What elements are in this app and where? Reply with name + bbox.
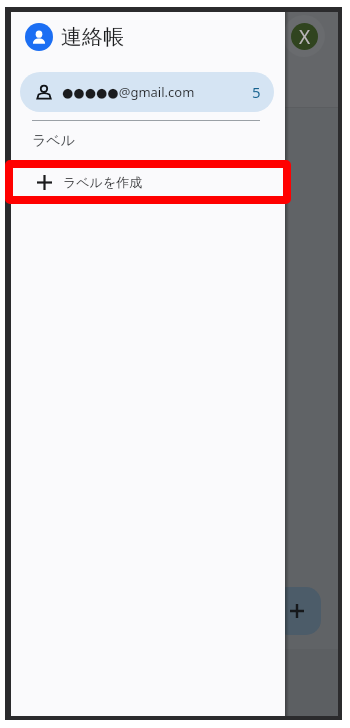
button[interactable]: Create contact <box>273 587 321 635</box>
staticText: 5 <box>252 82 261 102</box>
staticText: X <box>299 24 311 50</box>
button[interactable]: 連絡帳 <box>11 18 285 56</box>
staticText: ラベル <box>32 132 75 150</box>
staticText: ラベルを作成 <box>63 174 143 190</box>
button[interactable]: ラベルを作成 <box>11 164 285 200</box>
staticText: ●●●●●@gmail.com <box>62 83 195 101</box>
button[interactable]: ●●●●●@gmail.com <box>20 72 274 112</box>
button[interactable]: Account <box>283 15 325 57</box>
staticText: 連絡帳 <box>61 24 124 50</box>
